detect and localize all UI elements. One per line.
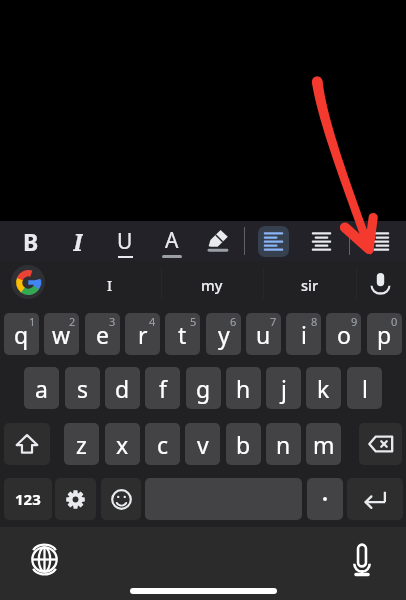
staticText: my [201,275,223,295]
button[interactable]: Change language [31,546,58,573]
button[interactable]: Voice input [371,273,390,294]
staticText: i [301,319,307,350]
button[interactable]: Enter [347,478,403,520]
button[interactable]: g [186,367,221,409]
staticText: 8 [311,314,318,327]
staticText: u [256,319,271,350]
staticText: r [138,319,148,350]
button[interactable]: Backspace [359,423,402,465]
button[interactable]: e [85,313,120,355]
staticText: e [96,319,109,350]
button[interactable]: k [306,367,341,409]
button[interactable]: w [44,313,79,355]
button[interactable]: d [105,367,140,409]
button[interactable]: q [4,313,39,355]
button[interactable]: m [306,423,341,465]
staticText: 7 [270,314,277,327]
button[interactable]: c [145,423,180,465]
button[interactable]: t [165,313,200,355]
staticText: 123 [15,489,41,509]
button[interactable]: Align right [364,226,395,257]
button[interactable]: x [105,423,140,465]
button[interactable]: Google search [11,265,45,299]
button[interactable]: f [145,367,180,409]
staticText: 0 [391,314,398,327]
staticText: q [14,319,29,350]
staticText: B [23,226,39,257]
button[interactable] [307,478,343,520]
button[interactable]: Text colour [153,225,191,257]
button[interactable]: Align left [258,226,289,257]
button[interactable]: Bold [12,225,50,257]
staticText: z [76,429,87,460]
staticText: w [52,319,71,350]
staticText: f [159,373,167,404]
button[interactable]: j [266,367,301,409]
staticText: a [35,373,48,404]
staticText: I [107,275,113,295]
staticText: 9 [351,314,358,327]
staticText: c [157,429,169,460]
button[interactable]: s [65,367,100,409]
button[interactable]: u [246,313,281,355]
button[interactable]: Settings [55,478,96,520]
staticText: 1 [29,314,36,327]
staticText: 2 [69,314,76,327]
staticText: 5 [190,314,197,327]
staticText: b [236,429,251,460]
button[interactable]: Underline [106,225,144,257]
staticText: l [362,373,368,404]
staticText: A [165,226,179,255]
button[interactable]: my [161,261,263,305]
staticText: 3 [109,314,116,327]
staticText: n [276,429,291,460]
staticText: sir [301,275,319,295]
staticText: h [236,373,251,404]
button[interactable]: Align centre [306,226,337,257]
staticText: d [115,373,130,404]
button[interactable]: z [64,423,99,465]
staticText: m [313,429,335,460]
staticText: y [218,319,230,350]
staticText: v [197,429,209,460]
button[interactable]: I [59,261,161,305]
staticText: p [377,319,392,350]
button[interactable]: 123 [4,478,52,520]
button[interactable]: h [226,367,261,409]
staticText: I [73,225,83,257]
button[interactable]: r [125,313,160,355]
button[interactable]: y [206,313,241,355]
staticText: s [77,373,89,404]
staticText: t [178,319,187,350]
staticText: 4 [149,314,156,327]
button[interactable]: v [185,423,220,465]
button[interactable]: Italic [59,225,97,257]
staticText: x [116,429,129,460]
button[interactable]: o [326,313,361,355]
button[interactable]: l [347,367,382,409]
button[interactable]: Highlight [200,225,238,257]
staticText: 6 [230,314,237,327]
button[interactable]: sir [263,261,356,305]
button[interactable]: n [266,423,301,465]
staticText: g [196,373,211,404]
button[interactable]: Shift [4,423,50,465]
button[interactable]: p [367,313,402,355]
staticText: o [337,319,351,350]
button[interactable]: i [286,313,321,355]
button[interactable]: b [226,423,261,465]
staticText: U [117,227,133,256]
button[interactable]: Voice input [351,544,373,576]
staticText: k [317,373,330,404]
button[interactable]: Emoji [101,478,141,520]
staticText: j [281,373,287,404]
button[interactable]: a [24,367,59,409]
